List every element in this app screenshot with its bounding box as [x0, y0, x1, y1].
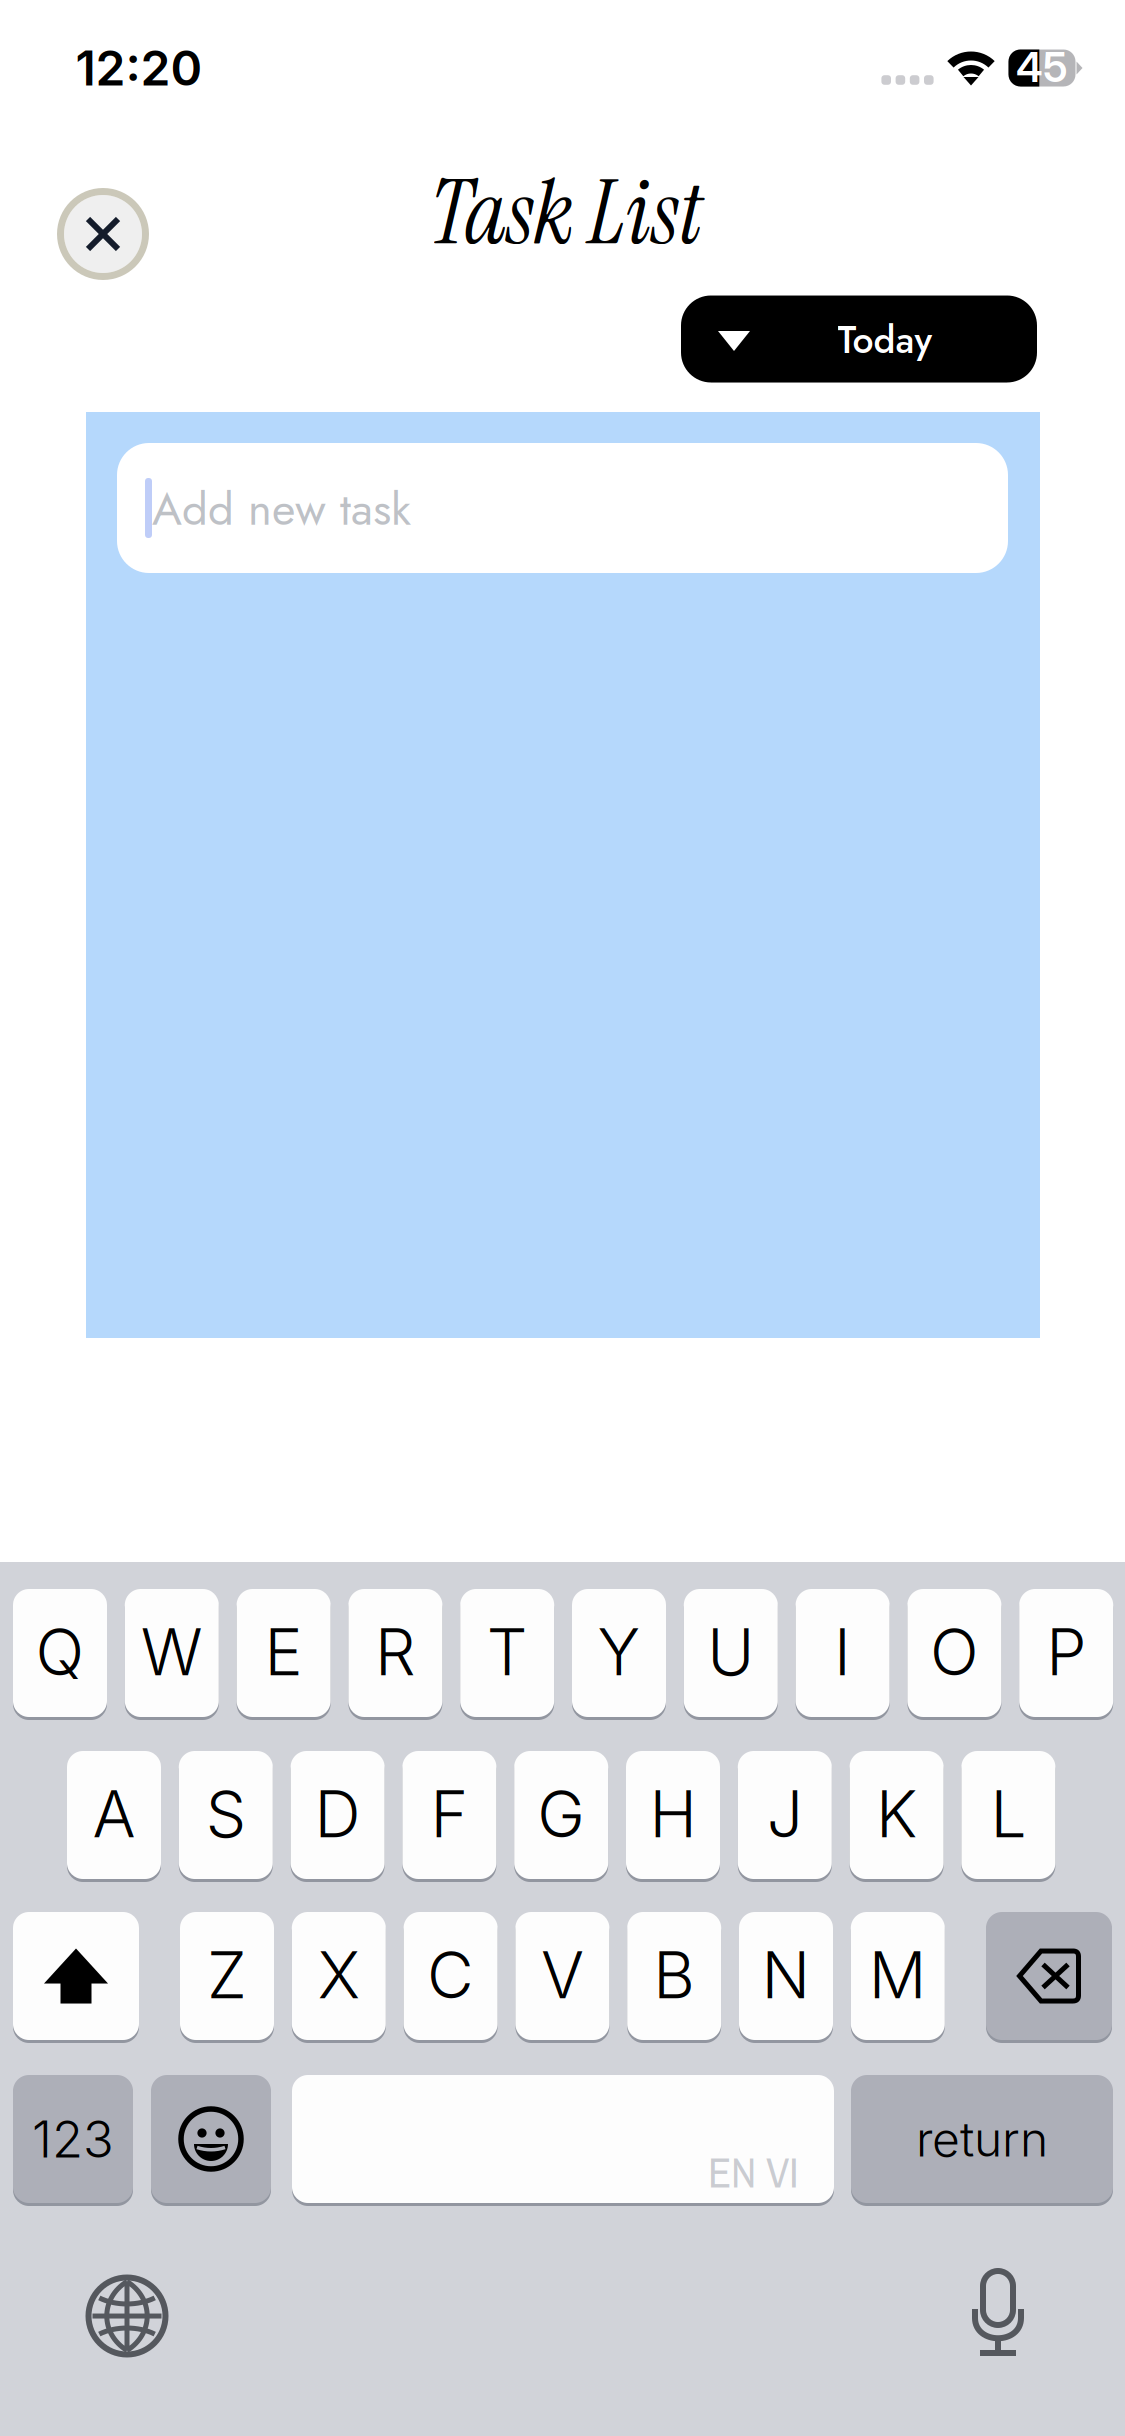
staticText: Add new task [152, 476, 411, 542]
button[interactable]: Z [180, 1908, 274, 2044]
staticText: O [930, 1613, 979, 1691]
button[interactable]: Close [60, 191, 146, 277]
staticText: T [487, 1613, 528, 1691]
staticText: Today [837, 313, 932, 367]
staticText: E [265, 1613, 303, 1691]
staticText: D [315, 1775, 361, 1853]
staticText: N [761, 1936, 810, 2014]
button[interactable]: Q [13, 1585, 107, 1721]
staticText: V [541, 1936, 584, 2014]
button[interactable]: EN VI [292, 2071, 834, 2207]
staticText: P [1046, 1613, 1086, 1691]
button[interactable]: R [348, 1585, 442, 1721]
button[interactable]: J [738, 1747, 832, 1883]
staticText: Y [597, 1613, 640, 1691]
staticText: R [375, 1613, 416, 1691]
button[interactable]: V [515, 1908, 609, 2044]
button[interactable]: P [1019, 1585, 1113, 1721]
staticText: G [537, 1775, 585, 1853]
button[interactable]: F [402, 1747, 496, 1883]
staticText: Task List [429, 155, 702, 271]
button[interactable]: E [237, 1585, 331, 1721]
staticText: A [92, 1775, 135, 1853]
staticText: U [707, 1613, 754, 1691]
button[interactable]: O [907, 1585, 1001, 1721]
button[interactable]: C [404, 1908, 498, 2044]
staticText: X [318, 1936, 360, 2014]
staticText: K [876, 1775, 917, 1853]
staticText: 123 [32, 2108, 114, 2170]
button[interactable]: S [179, 1747, 273, 1883]
button[interactable]: T [460, 1585, 554, 1721]
button[interactable]: I [796, 1585, 890, 1721]
staticText: B [653, 1936, 695, 2014]
staticText: 45 [1016, 42, 1068, 92]
staticText: 12:20 [75, 39, 202, 97]
button[interactable]: B [627, 1908, 721, 2044]
button[interactable]: W [125, 1585, 219, 1721]
staticText: return [916, 2110, 1048, 2168]
button[interactable] [986, 1908, 1112, 2044]
button[interactable]: 123 [13, 2071, 133, 2207]
staticText: M [869, 1936, 927, 2014]
staticText: L [990, 1775, 1026, 1853]
button[interactable]: K [850, 1747, 944, 1883]
button[interactable]: Today [681, 295, 1037, 382]
button[interactable]: L [961, 1747, 1055, 1883]
staticText: W [141, 1613, 203, 1691]
staticText: F [430, 1775, 468, 1853]
staticText: S [206, 1775, 246, 1853]
button[interactable]: H [626, 1747, 720, 1883]
staticText: C [427, 1936, 474, 2014]
button[interactable] [151, 2071, 271, 2207]
button[interactable]: Next keyboard [82, 2271, 172, 2361]
button[interactable]: return [851, 2071, 1113, 2207]
button[interactable]: Dictate [953, 2263, 1043, 2363]
button[interactable]: A [67, 1747, 161, 1883]
staticText: Z [207, 1936, 247, 2014]
button[interactable] [13, 1908, 139, 2044]
staticText: J [767, 1775, 803, 1853]
button[interactable]: X [292, 1908, 386, 2044]
button[interactable]: U [684, 1585, 778, 1721]
button[interactable]: G [514, 1747, 608, 1883]
staticText: Q [35, 1613, 84, 1691]
button[interactable]: M [851, 1908, 945, 2044]
staticText: H [649, 1775, 696, 1853]
button[interactable]: Y [572, 1585, 666, 1721]
button[interactable]: D [291, 1747, 385, 1883]
staticText: EN VI [708, 2143, 799, 2201]
staticText: I [834, 1613, 851, 1691]
button[interactable]: N [739, 1908, 833, 2044]
button[interactable]: Add new task [117, 443, 1008, 573]
